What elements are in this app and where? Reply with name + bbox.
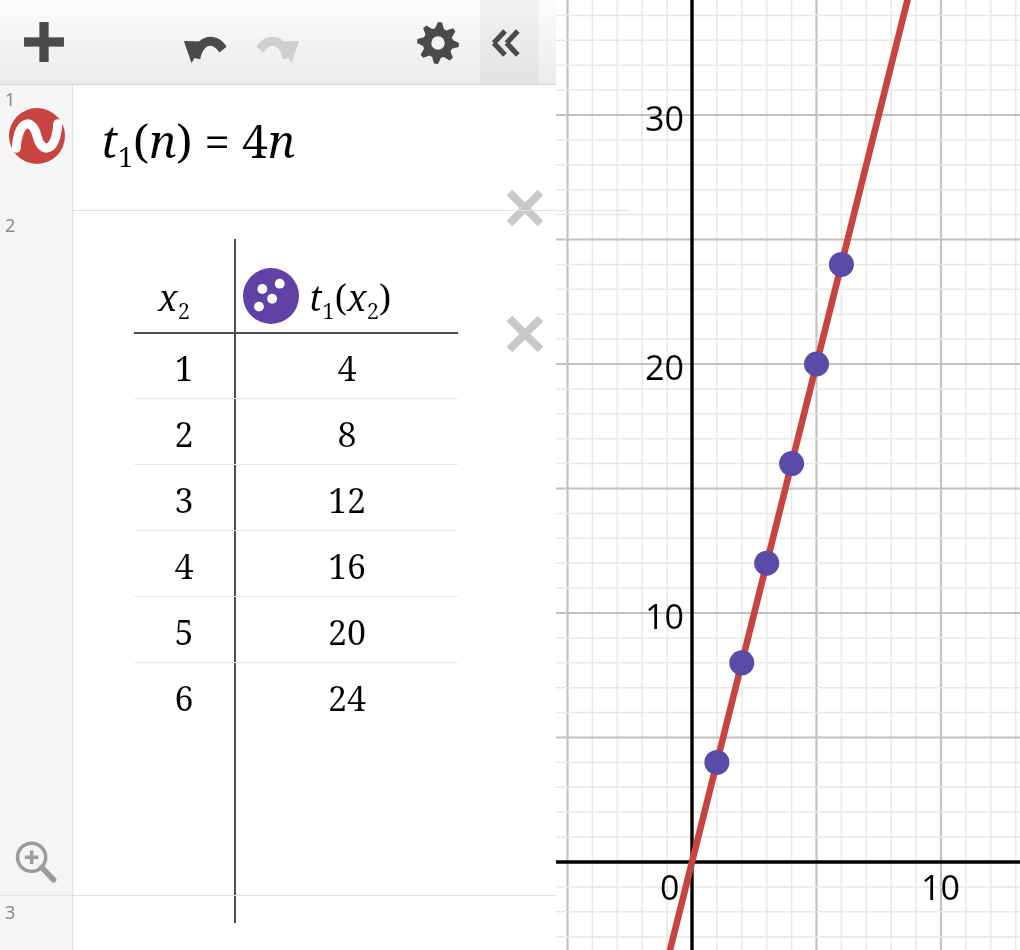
staticText: 4 [236,345,458,391]
button[interactable]: Undo [174,12,236,74]
staticText: 1 [5,87,16,112]
staticText: 20 [236,609,458,655]
button[interactable]: Settings [409,14,467,72]
staticText: 5 [134,609,234,655]
staticText: x2 [158,273,190,325]
button[interactable]: Delete expression [496,179,554,237]
button[interactable]: Collapse panel [480,0,538,85]
staticText: t1(x2) [309,273,392,325]
staticText: 10 [645,593,684,639]
button[interactable]: 2 [0,211,556,895]
staticText: 24 [236,675,458,721]
staticText: 20 [645,344,684,390]
button[interactable]: Add expression [12,10,76,74]
staticText: 0 [660,864,680,910]
staticText: 16 [236,543,458,589]
staticText: 4 [134,543,234,589]
staticText: 1 [134,345,234,391]
staticText: 6 [134,675,234,721]
staticText: 10 [921,864,960,910]
button[interactable]: 3 [0,896,556,950]
staticText: 30 [645,95,684,141]
button[interactable] [242,267,300,325]
staticText: 3 [5,900,16,925]
button[interactable]: Redo [247,12,309,74]
staticText: 2 [5,213,16,238]
staticText: t1(n) = 4n [101,109,296,175]
button[interactable]: Delete expression [496,305,554,363]
staticText: 3 [134,477,234,523]
staticText: 12 [236,477,458,523]
button[interactable]: 1 [0,85,556,210]
staticText: 2 [134,411,234,457]
staticText: 8 [236,411,458,457]
button[interactable]: Zoom to fit [9,836,63,890]
